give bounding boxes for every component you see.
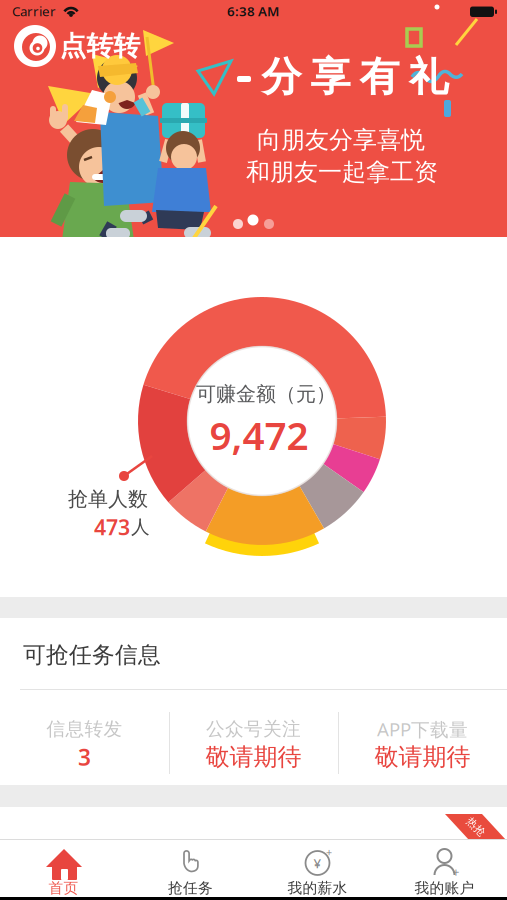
staticText: 人 xyxy=(131,515,150,538)
button[interactable]: 分享有礼 活动 xyxy=(0,0,507,237)
staticText: 可抢任务信息 xyxy=(23,641,161,669)
staticText: + xyxy=(326,845,332,859)
staticText: APP下载量 xyxy=(377,717,468,741)
staticText: 分享有礼 xyxy=(261,52,448,101)
button[interactable]: APP下载量 xyxy=(338,699,506,785)
staticText: 6:38 AM xyxy=(227,2,279,20)
button[interactable]: ¥ xyxy=(254,839,381,897)
staticText: ¥ xyxy=(313,854,321,872)
button[interactable]: + xyxy=(381,839,507,897)
staticText: + xyxy=(452,864,459,880)
staticText: Carrier xyxy=(12,2,56,20)
staticText: 公众号关注 xyxy=(206,717,301,740)
staticText: 473 xyxy=(94,513,130,541)
staticText: 向朋友分享喜悦 xyxy=(257,125,425,155)
staticText: 敬请期待 xyxy=(205,742,301,772)
staticText: 3 xyxy=(78,742,91,772)
staticText: 抢单人数 xyxy=(68,487,148,511)
staticText: 热抢 xyxy=(465,820,487,833)
staticText: 首页 xyxy=(48,879,78,897)
staticText: 9,472 xyxy=(209,409,308,461)
button[interactable]: 信息转发 xyxy=(0,699,168,785)
button[interactable]: 首页 xyxy=(0,839,127,897)
staticText: 点转转 xyxy=(59,30,140,62)
staticText: 和朋友一起拿工资 xyxy=(246,157,438,187)
staticText: 我的薪水 xyxy=(287,879,347,897)
staticText: 信息转发 xyxy=(46,717,122,740)
staticText: 可赚金额（元） xyxy=(196,382,336,406)
staticText: 我的账户 xyxy=(414,879,474,897)
button[interactable]: 抢任务 xyxy=(127,839,254,897)
staticText: 敬请期待 xyxy=(374,742,470,772)
staticText: 抢任务 xyxy=(168,879,213,897)
button[interactable]: 公众号关注 xyxy=(169,699,337,785)
